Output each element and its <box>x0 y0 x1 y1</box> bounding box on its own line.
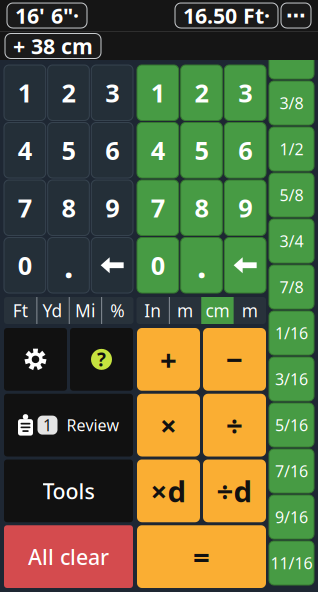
button[interactable]: 1 <box>4 394 133 457</box>
button[interactable]: 0 <box>137 237 179 293</box>
button[interactable]: 5 <box>181 122 222 178</box>
staticText: 5/8 <box>279 184 303 206</box>
staticText: 1 <box>43 414 52 436</box>
button[interactable]: 6 <box>91 122 133 178</box>
staticText: 3 <box>238 76 252 109</box>
staticText: 6 <box>105 133 119 167</box>
staticText: 3/16 <box>275 368 308 390</box>
button[interactable]: ÷ <box>203 394 266 457</box>
button[interactable]: 1/2 <box>269 127 314 171</box>
button[interactable]: Yd <box>36 297 69 324</box>
button[interactable]: . <box>181 237 222 293</box>
button[interactable]: 11/16 <box>269 541 314 585</box>
button[interactable]: 5 <box>48 122 89 178</box>
staticText: cm <box>205 299 229 322</box>
staticText: 8 <box>61 191 75 224</box>
button[interactable]: More <box>281 3 311 28</box>
staticText: . <box>197 243 206 287</box>
button[interactable]: m <box>234 297 266 324</box>
button[interactable]: 3 <box>91 65 133 120</box>
staticText: % <box>110 299 124 322</box>
button[interactable]: − <box>203 328 266 391</box>
staticText: 9/16 <box>275 506 308 528</box>
button[interactable]: . <box>48 237 89 293</box>
staticText: Yd <box>43 299 63 322</box>
staticText: Ft <box>13 299 28 322</box>
button[interactable]: 8 <box>181 180 222 235</box>
button[interactable] <box>269 35 314 79</box>
staticText: 1 <box>18 76 32 109</box>
staticText: 3 <box>105 76 119 109</box>
button[interactable]: ÷d <box>203 459 266 522</box>
button[interactable]: Backspace <box>224 237 266 293</box>
staticText: + 38 cm <box>13 32 93 60</box>
staticText: 11/16 <box>270 552 312 574</box>
staticText: m <box>242 299 258 322</box>
button[interactable]: All clear <box>4 525 133 588</box>
staticText: 5 <box>61 133 75 167</box>
button[interactable]: 0 <box>4 237 46 293</box>
staticText: In <box>144 299 161 322</box>
button[interactable]: Mi <box>69 297 101 324</box>
staticText: 0 <box>151 248 165 282</box>
button[interactable]: 2 <box>48 65 89 120</box>
staticText: . <box>64 243 73 287</box>
button[interactable]: 1/16 <box>269 311 314 355</box>
button[interactable]: 3/4 <box>269 219 314 263</box>
staticText: ? <box>97 347 106 372</box>
button[interactable]: 7/16 <box>269 449 314 493</box>
button[interactable]: ×d <box>137 459 200 522</box>
button[interactable]: 3/16 <box>269 357 314 401</box>
button[interactable]: cm <box>201 297 234 324</box>
button[interactable]: 2 <box>181 65 222 120</box>
button[interactable]: % <box>101 297 133 324</box>
button[interactable]: 6 <box>224 122 266 178</box>
button[interactable]: In <box>136 297 169 324</box>
button[interactable]: 9 <box>91 180 133 235</box>
button[interactable]: 1 <box>4 65 46 120</box>
staticText: 1 <box>151 76 165 109</box>
staticText: 9 <box>105 191 119 224</box>
staticText: Review <box>66 414 119 436</box>
button[interactable]: 4 <box>137 122 179 178</box>
button[interactable]: 8 <box>48 180 89 235</box>
button[interactable]: m <box>169 297 201 324</box>
button[interactable]: 7 <box>137 180 179 235</box>
button[interactable]: 3 <box>224 65 266 120</box>
button[interactable]: 9 <box>224 180 266 235</box>
staticText: 3/8 <box>279 92 303 114</box>
staticText: ÷ <box>226 406 243 445</box>
staticText: − <box>226 340 243 379</box>
button[interactable]: Help <box>70 328 133 391</box>
staticText: Mi <box>75 299 95 322</box>
button[interactable]: 7/8 <box>269 265 314 309</box>
staticText: 1/16 <box>275 322 308 344</box>
button[interactable]: + <box>137 328 200 391</box>
staticText: 2 <box>194 76 208 109</box>
staticText: m <box>177 299 193 322</box>
button[interactable]: 5/16 <box>269 403 314 447</box>
button[interactable]: 16.50 Ft· <box>175 3 278 28</box>
button[interactable]: 9/16 <box>269 495 314 539</box>
staticText: 4 <box>18 133 32 167</box>
button[interactable]: 7 <box>4 180 46 235</box>
staticText: 1/2 <box>279 138 303 160</box>
staticText: 7 <box>151 191 165 224</box>
staticText: × <box>160 406 177 445</box>
button[interactable]: Tools <box>4 459 133 522</box>
button[interactable]: × <box>137 394 200 457</box>
button[interactable]: + 38 cm <box>5 33 101 58</box>
button[interactable]: 5/8 <box>269 173 314 217</box>
staticText: 7 <box>18 191 32 224</box>
staticText: + <box>160 340 177 379</box>
button[interactable]: = <box>137 525 266 588</box>
button[interactable]: 3/8 <box>269 81 314 125</box>
button[interactable]: 4 <box>4 122 46 178</box>
button[interactable]: 1 <box>137 65 179 120</box>
button[interactable]: Ft <box>4 297 36 324</box>
button[interactable]: 16' 6"· <box>7 3 87 28</box>
button[interactable]: Backspace <box>91 237 133 293</box>
staticText: Tools <box>42 477 94 505</box>
button[interactable]: Settings <box>4 328 67 391</box>
staticText: 3/4 <box>279 230 303 252</box>
